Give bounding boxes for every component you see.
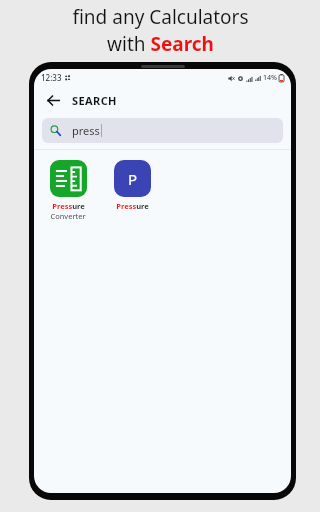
- staticText: find any Calculators: [72, 4, 249, 30]
- other: Pressure Converter: [50, 160, 87, 197]
- button[interactable]: Pressure Converter: [43, 158, 93, 223]
- staticText: Pressure: [52, 201, 85, 211]
- button[interactable]: Pressure: [107, 158, 157, 213]
- other: Pressure: [114, 160, 151, 197]
- staticText: press: [72, 123, 100, 138]
- staticText: Pressure: [116, 201, 149, 211]
- staticText: 14%: [263, 73, 277, 83]
- staticText: with Search: [107, 31, 214, 57]
- staticText: SEARCH: [72, 93, 117, 108]
- staticText: Converter: [50, 211, 86, 221]
- button[interactable]: Back: [42, 89, 64, 111]
- staticText: P: [128, 169, 138, 189]
- button[interactable]: press: [42, 118, 283, 143]
- staticText: 12:33: [41, 72, 62, 83]
